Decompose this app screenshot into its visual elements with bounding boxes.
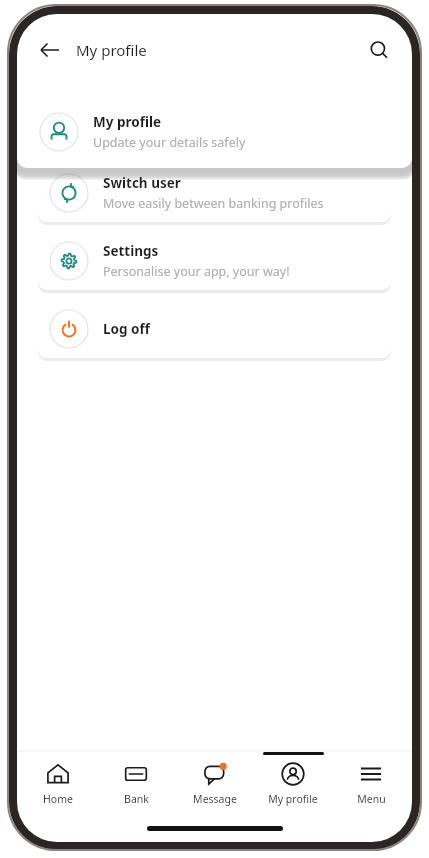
staticText: Move easily between banking profiles xyxy=(103,195,324,212)
staticText: Settings xyxy=(103,242,159,260)
staticText: Home xyxy=(43,792,73,806)
button[interactable]: Home xyxy=(21,752,95,814)
button[interactable]: My profile xyxy=(256,752,330,814)
button[interactable]: Menu xyxy=(334,752,408,814)
staticText: Switch user xyxy=(103,174,181,192)
staticText: Log off xyxy=(103,320,150,338)
button[interactable]: Bank xyxy=(99,752,173,814)
staticText: My profile xyxy=(93,113,162,131)
button[interactable]: Log off xyxy=(38,300,391,358)
staticText: Update your details safely xyxy=(93,134,246,151)
staticText: Bank xyxy=(124,792,149,806)
staticText: Personalise your app, your way! xyxy=(103,263,290,280)
button[interactable]: My profile xyxy=(17,96,412,168)
staticText: My profile xyxy=(76,40,147,60)
button[interactable]: Back xyxy=(33,33,67,67)
button[interactable]: Switch user xyxy=(38,164,391,222)
staticText: My profile xyxy=(268,792,318,806)
staticText: Menu xyxy=(357,792,386,806)
button[interactable]: Search xyxy=(361,32,397,68)
staticText: Message xyxy=(193,792,237,806)
button[interactable]: Message xyxy=(178,752,252,814)
button[interactable]: Settings xyxy=(38,232,391,290)
